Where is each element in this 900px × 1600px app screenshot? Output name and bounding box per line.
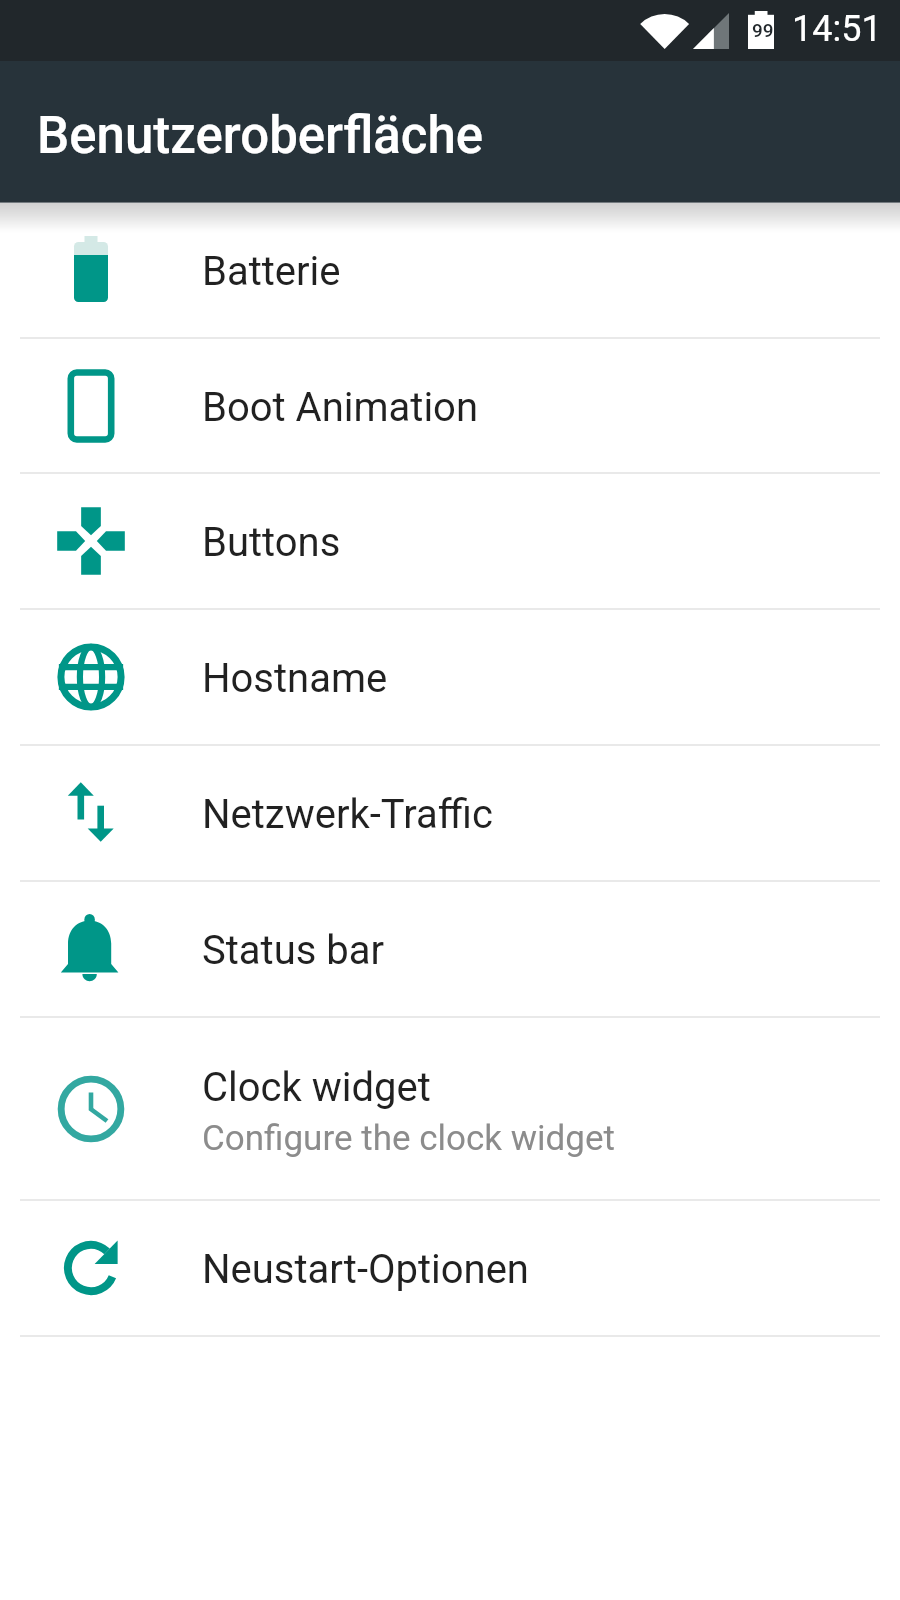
button[interactable]: Status bar bbox=[0, 881, 900, 1017]
staticText: Configure the clock widget bbox=[202, 1118, 615, 1159]
staticText: 14:51 bbox=[792, 8, 882, 50]
button[interactable]: Hostname bbox=[0, 609, 900, 745]
staticText: Status bar bbox=[202, 927, 385, 974]
button[interactable]: Clock widget bbox=[0, 1017, 900, 1201]
staticText: 99 bbox=[752, 19, 774, 41]
staticText: Boot Animation bbox=[202, 384, 479, 431]
staticText: Batterie bbox=[202, 248, 341, 295]
staticText: Buttons bbox=[202, 519, 341, 566]
staticText: Neustart-Optionen bbox=[202, 1246, 529, 1293]
staticText: Benutzeroberfläche bbox=[37, 106, 484, 166]
staticText: Netzwerk-Traffic bbox=[202, 791, 493, 838]
button[interactable]: Neustart-Optionen bbox=[0, 1200, 900, 1336]
button[interactable]: Netzwerk-Traffic bbox=[0, 745, 900, 881]
button[interactable]: Batterie bbox=[0, 202, 900, 338]
button[interactable]: Boot Animation bbox=[0, 338, 900, 474]
staticText: Hostname bbox=[202, 655, 388, 702]
staticText: Clock widget bbox=[202, 1064, 431, 1111]
button[interactable]: Buttons bbox=[0, 473, 900, 609]
